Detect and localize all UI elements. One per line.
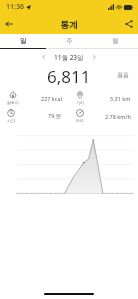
staticText: 칼로리 [7, 100, 19, 105]
button[interactable]: 시간 [0, 107, 69, 125]
staticText: 속도 [76, 118, 84, 123]
staticText: 2.78 km/h [105, 113, 131, 120]
staticText: 11월 23일 [54, 53, 84, 62]
staticText: 걸음 [117, 71, 129, 79]
staticText: 일 [20, 37, 27, 45]
staticText: 통계 [60, 19, 78, 30]
staticText: 79 분 [48, 112, 62, 120]
staticText: 시간 [7, 118, 15, 123]
button[interactable]: Back [0, 15, 18, 33]
staticText: 월 [112, 37, 119, 45]
button[interactable]: 주 [46, 34, 92, 48]
button[interactable]: 일 [0, 34, 46, 48]
button[interactable]: 속도 [69, 107, 138, 125]
button[interactable]: Next day [88, 51, 100, 63]
staticText: 11:36 [6, 2, 24, 12]
staticText: 5.31 km [110, 95, 131, 102]
staticText: 거리 [76, 100, 84, 105]
button[interactable]: 거리 [69, 89, 138, 107]
button[interactable]: Share [120, 15, 138, 33]
button[interactable]: Previous day [38, 51, 50, 63]
staticText: 6,811 [47, 65, 91, 85]
button[interactable]: 월 [92, 34, 138, 48]
staticText: 227 kcal [41, 95, 62, 102]
staticText: 주 [66, 37, 73, 45]
button[interactable]: 칼로리 [0, 89, 69, 107]
